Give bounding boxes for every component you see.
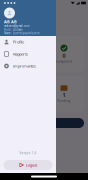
- staticText: Version 1.0: [19, 151, 36, 155]
- staticText: Name: Lorem ipsum lorem: [4, 31, 39, 35]
- staticText: 0: [22, 52, 25, 59]
- staticText: 0: [62, 52, 65, 59]
- staticText: Pending: [57, 99, 70, 103]
- button[interactable]: Imprimantes: [0, 60, 56, 72]
- staticText: ambanta@gmail.com: [4, 24, 29, 28]
- staticText: AB AB: [4, 19, 17, 24]
- staticText: Logout: [26, 162, 37, 168]
- button[interactable]: Start: [4, 118, 84, 128]
- staticText: 1: [62, 91, 65, 99]
- button[interactable]: Logout: [3, 160, 52, 170]
- staticText: Rapports: [13, 51, 28, 57]
- staticText: Profile: [13, 39, 24, 45]
- staticText: Role: Domain: [4, 28, 23, 31]
- button[interactable]: Profile: [0, 36, 56, 48]
- staticText: Imprimantes: [13, 63, 36, 69]
- staticText: Completed: [56, 60, 72, 63]
- button[interactable]: Rapports: [0, 48, 56, 60]
